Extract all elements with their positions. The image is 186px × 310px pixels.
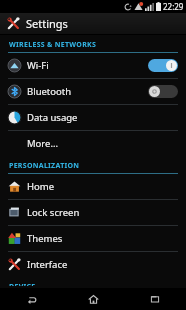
staticText: Lock screen: [27, 206, 80, 219]
staticText: More...: [27, 137, 59, 150]
button[interactable]: Settings: [0, 13, 186, 34]
staticText: Data usage: [27, 111, 78, 124]
button[interactable]: More...: [0, 131, 186, 156]
staticText: Wi-Fi: [27, 59, 49, 72]
button[interactable]: Interface: [0, 252, 186, 277]
staticText: Home: [27, 180, 55, 193]
button[interactable]: Off: [148, 85, 178, 98]
staticText: WIRELESS & NETWORKS: [9, 40, 97, 50]
button[interactable]: Themes: [0, 226, 186, 251]
button[interactable]: Wi-Fi: [0, 53, 186, 78]
staticText: Interface: [27, 258, 68, 271]
staticText: Settings: [26, 16, 68, 31]
button[interactable]: Bluetooth: [0, 79, 186, 104]
button[interactable]: Back: [0, 288, 62, 310]
staticText: DEVICE: [9, 282, 36, 286]
button[interactable]: Home: [62, 288, 124, 310]
button[interactable]: Home: [0, 174, 186, 199]
button[interactable]: Recent apps: [124, 288, 186, 310]
button[interactable]: Lock screen: [0, 200, 186, 225]
staticText: PERSONALIZATION: [9, 161, 80, 171]
staticText: Themes: [27, 232, 63, 245]
staticText: Bluetooth: [27, 85, 72, 98]
button[interactable]: Data usage: [0, 105, 186, 130]
button[interactable]: On: [148, 59, 178, 72]
staticText: 22:29: [163, 1, 184, 12]
